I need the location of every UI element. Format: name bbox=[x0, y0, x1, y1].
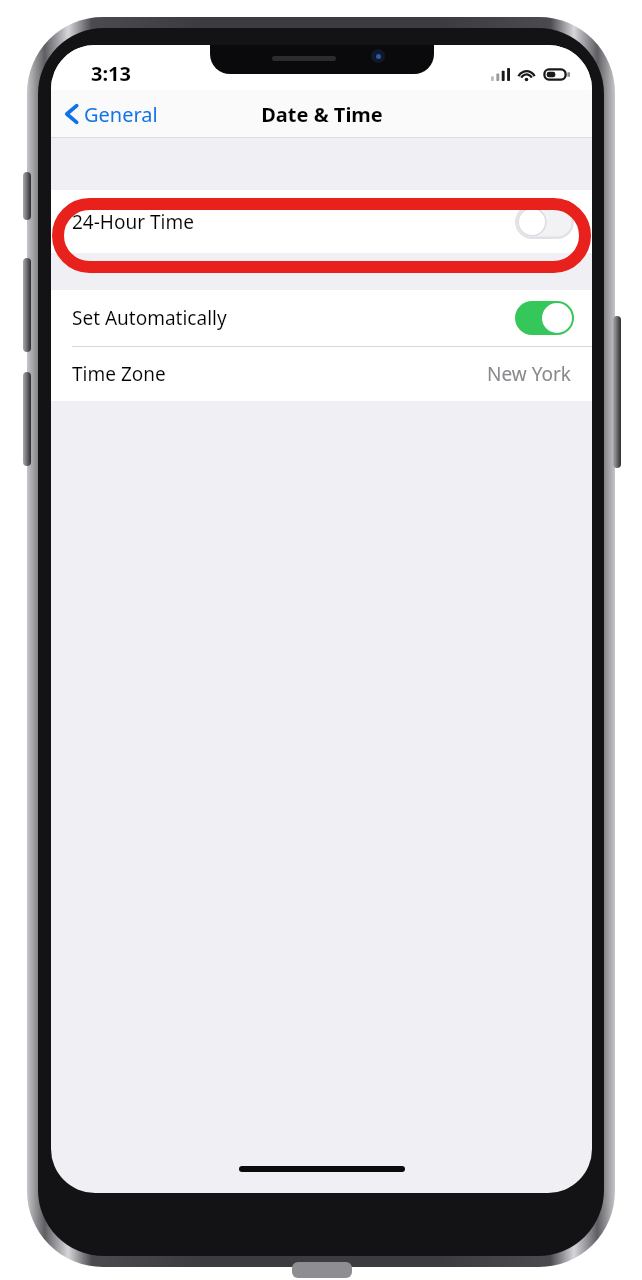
button[interactable]: 24-Hour Time bbox=[51, 190, 592, 253]
button[interactable]: General bbox=[51, 90, 170, 138]
staticText: New York bbox=[487, 361, 571, 387]
button[interactable]: Time Zone bbox=[51, 347, 592, 401]
staticText: 3:13 bbox=[91, 60, 131, 87]
button[interactable]: 24-Hour Time off bbox=[515, 205, 574, 239]
staticText: Date & Time bbox=[261, 101, 383, 128]
button[interactable]: Set Automatically on bbox=[515, 301, 574, 335]
staticText: 24-Hour Time bbox=[72, 209, 194, 235]
button[interactable]: Set Automatically bbox=[51, 290, 592, 346]
staticText: Set Automatically bbox=[72, 305, 227, 331]
staticText: General bbox=[84, 101, 158, 128]
staticText: Time Zone bbox=[72, 361, 166, 387]
